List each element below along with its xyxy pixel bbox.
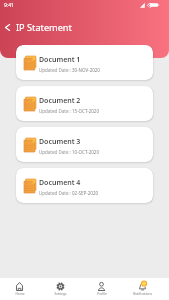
- staticText: Updated Date :: [39, 108, 72, 114]
- button[interactable]: Profile: [82, 279, 121, 299]
- staticText: Document 1: [39, 55, 81, 65]
- staticText: Updated Date :: [39, 67, 72, 73]
- staticText: Updated Date :: [39, 149, 72, 155]
- staticText: 9:41: [4, 2, 14, 9]
- staticText: 30-NOV-2020: [72, 67, 100, 73]
- button[interactable]: Home: [0, 279, 39, 299]
- staticText: IP Statement: [16, 21, 72, 34]
- button[interactable]: Document 3: [16, 127, 153, 162]
- staticText: Updated Date :: [39, 190, 72, 196]
- staticText: Notifications: [133, 292, 152, 296]
- button[interactable]: Document 2: [16, 86, 153, 121]
- staticText: Settings: [54, 292, 67, 296]
- staticText: Document 2: [39, 96, 81, 106]
- button[interactable]: Back: [1, 20, 14, 34]
- button[interactable]: Notifications: [123, 279, 162, 299]
- staticText: 10-OCT-2020: [72, 149, 100, 155]
- staticText: Profile: [97, 292, 107, 296]
- staticText: Document 3: [39, 137, 81, 147]
- staticText: 02-SEP-2020: [72, 190, 99, 196]
- staticText: Document 4: [39, 178, 81, 188]
- button[interactable]: Settings: [41, 279, 80, 299]
- button[interactable]: Document 4: [16, 168, 153, 203]
- button[interactable]: Document 1: [16, 45, 153, 80]
- staticText: Home: [15, 292, 25, 296]
- staticText: 15-OCT-2020: [72, 108, 100, 114]
